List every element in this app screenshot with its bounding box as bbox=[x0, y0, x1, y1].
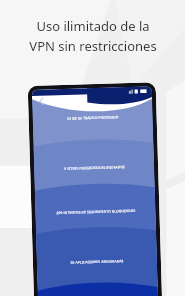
button[interactable]: 35 APLICACIONES ASEGURADAS bbox=[36, 230, 158, 291]
staticText: Uso ilimitado de la bbox=[36, 17, 150, 35]
staticText: 24 GB DE TRÁFICO PROTEGIDO bbox=[67, 114, 119, 120]
button[interactable]: Back bbox=[35, 94, 48, 108]
button[interactable]: 24 GB DE TRÁFICO PROTEGIDO bbox=[32, 86, 153, 147]
staticText: VPN sin restricciones bbox=[29, 37, 157, 55]
button[interactable]: 209 INTENTOS DE SEGUIMIENTO BLOQUEADOS bbox=[35, 187, 156, 234]
staticText: 209 INTENTOS DE SEGUIMIENTO BLOQUEADOS bbox=[56, 208, 135, 214]
staticText: 35 APLICACIONES ASEGURADAS bbox=[70, 258, 124, 264]
staticText: 9 SITIOS PELIGROSOS BLOQUEADOS bbox=[64, 164, 125, 170]
button[interactable]: 9 SITIOS PELIGROSOS BLOQUEADOS bbox=[33, 143, 155, 191]
button[interactable]: Back bbox=[32, 86, 158, 296]
